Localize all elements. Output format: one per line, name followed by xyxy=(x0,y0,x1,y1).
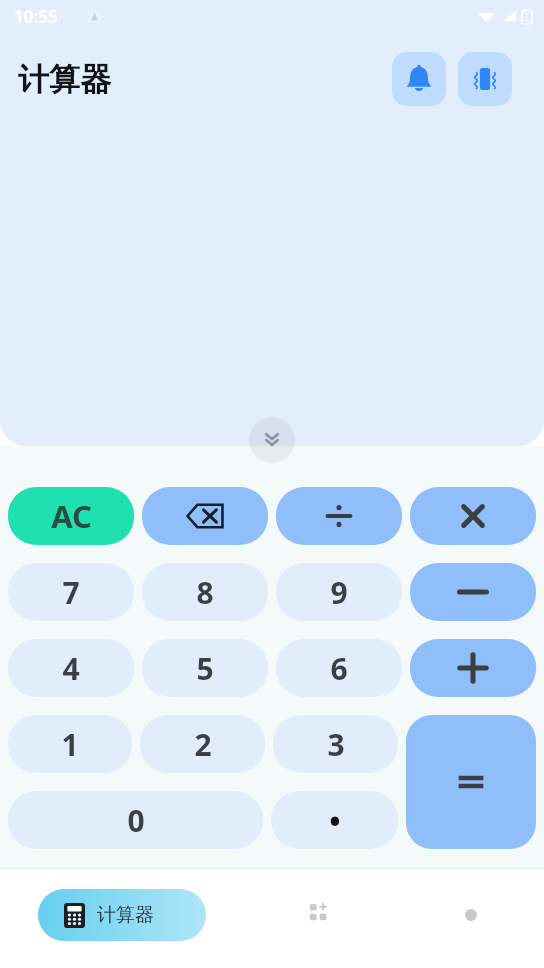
button[interactable]: 0 xyxy=(8,791,263,849)
button[interactable]: 1 xyxy=(8,715,132,773)
staticText: 计算器 xyxy=(97,903,154,927)
button[interactable]: 2 xyxy=(140,715,265,773)
staticText: • xyxy=(329,800,341,841)
staticText: AC xyxy=(51,495,92,537)
staticText: 0 xyxy=(127,800,145,841)
button[interactable]: Backspace xyxy=(142,487,268,545)
button[interactable]: 6 xyxy=(276,639,402,697)
button[interactable]: 7 xyxy=(8,563,134,621)
button[interactable]: Divide xyxy=(276,487,402,545)
button[interactable]: More xyxy=(448,892,494,938)
staticText: 1 xyxy=(61,724,79,765)
button[interactable]: 4 xyxy=(8,639,134,697)
staticText: 计算器 xyxy=(18,60,111,99)
button[interactable]: 3 xyxy=(273,715,398,773)
button[interactable]: Vibration xyxy=(458,52,512,106)
button[interactable]: AC xyxy=(8,487,134,545)
button[interactable]: Sound xyxy=(392,52,446,106)
staticText: 10:55 xyxy=(14,5,58,28)
button[interactable]: Plus xyxy=(410,639,536,697)
staticText: 6 xyxy=(330,648,348,689)
button[interactable]: 5 xyxy=(142,639,268,697)
button[interactable]: • xyxy=(271,791,398,849)
button[interactable]: Multiply xyxy=(410,487,536,545)
button[interactable]: Collapse history xyxy=(249,417,295,463)
staticText: 8 xyxy=(196,572,214,613)
staticText: 5 xyxy=(196,648,214,689)
staticText: 9 xyxy=(330,572,348,613)
staticText: 3 xyxy=(327,724,345,765)
staticText: 4 xyxy=(62,648,80,689)
button[interactable]: 9 xyxy=(276,563,402,621)
button[interactable]: Minus xyxy=(410,563,536,621)
staticText: 2 xyxy=(194,724,212,765)
button[interactable]: Add app xyxy=(298,892,344,938)
button[interactable]: 8 xyxy=(142,563,268,621)
button[interactable]: Equals xyxy=(406,715,536,849)
button[interactable]: 计算器 xyxy=(38,889,206,941)
staticText: 7 xyxy=(62,572,80,613)
